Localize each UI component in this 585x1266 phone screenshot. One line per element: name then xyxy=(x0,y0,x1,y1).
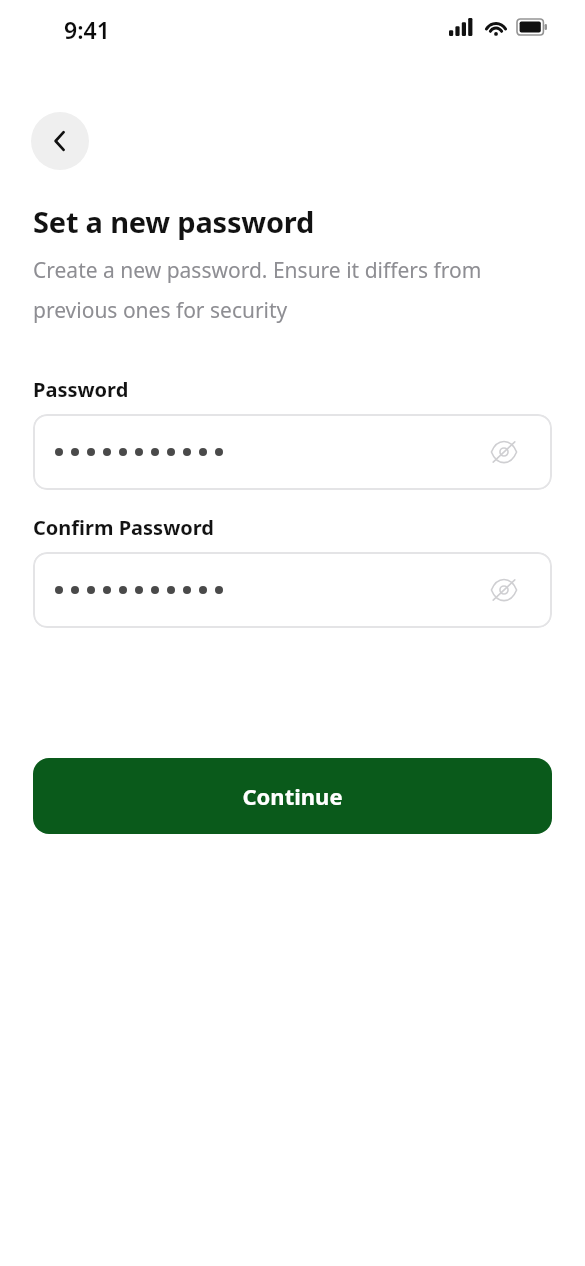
button[interactable]: Show password xyxy=(33,552,552,628)
button[interactable]: Back xyxy=(31,112,89,170)
button[interactable]: Show password xyxy=(33,414,552,490)
button[interactable]: Show password xyxy=(486,572,522,608)
staticText: Confirm Password xyxy=(33,514,214,541)
staticText: Set a new password xyxy=(33,202,315,241)
staticText: Password xyxy=(33,376,129,403)
button[interactable]: Continue xyxy=(33,758,552,834)
button[interactable]: Show password xyxy=(486,434,522,470)
staticText: Continue xyxy=(242,781,343,811)
staticText: Create a new password. Ensure it differs… xyxy=(33,256,533,325)
staticText: 9:41 xyxy=(64,14,110,45)
